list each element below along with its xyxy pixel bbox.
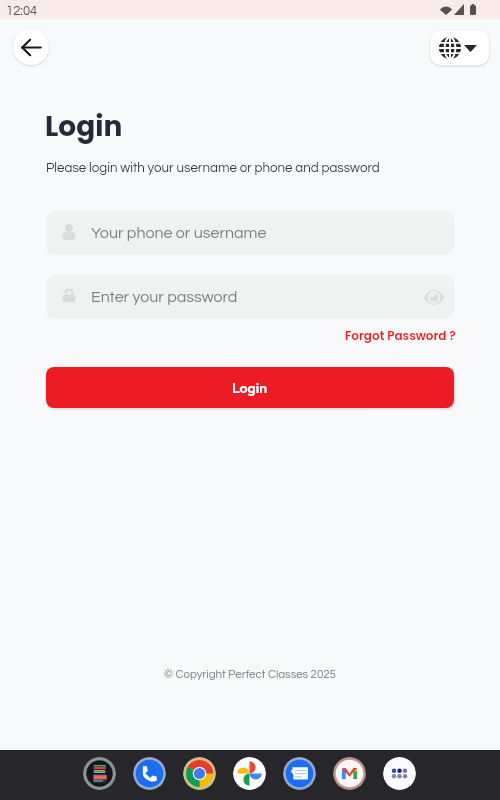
staticText: Enter your password (91, 289, 238, 305)
button[interactable]: Chrome (183, 757, 216, 790)
button[interactable]: All apps (383, 757, 416, 790)
button[interactable]: Change language (430, 30, 489, 65)
staticText: Your phone or username (91, 225, 267, 241)
button[interactable]: Phone (133, 757, 166, 790)
staticText: Please login with your username or phone… (46, 161, 380, 175)
staticText: Login (232, 379, 268, 397)
button[interactable]: Games (83, 757, 116, 790)
staticText: 12:04 (6, 4, 38, 17)
button[interactable]: Login (46, 367, 454, 408)
button[interactable]: Back (13, 29, 49, 65)
button[interactable]: Your phone or username (46, 211, 454, 255)
button[interactable]: Forgot Password ? (345, 327, 456, 344)
staticText: © Copyright Perfect Classes 2025 (0, 669, 500, 681)
button[interactable]: Show password (412, 275, 454, 319)
button[interactable]: Photos (233, 757, 266, 790)
staticText: Forgot Password ? (345, 327, 456, 344)
button[interactable]: Gmail (333, 757, 366, 790)
button[interactable]: Enter your password (46, 275, 454, 319)
staticText: Login (45, 107, 123, 146)
button[interactable]: Messages (283, 757, 316, 790)
